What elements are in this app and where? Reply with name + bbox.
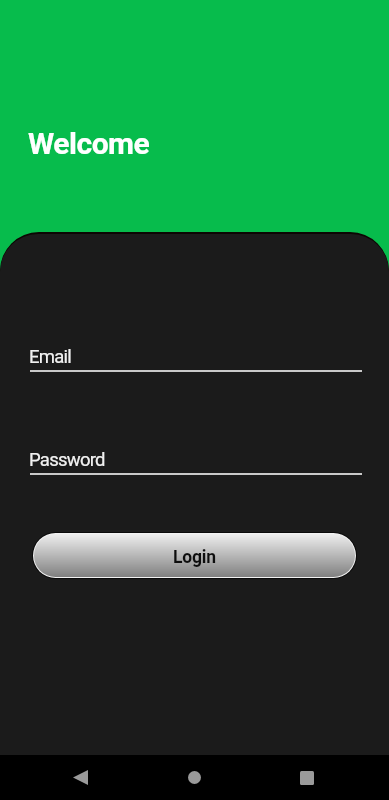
button[interactable]: Login — [34, 534, 355, 577]
staticText: Welcome — [28, 126, 150, 161]
staticText: Login — [173, 547, 216, 568]
button[interactable]: Back — [57, 755, 104, 800]
button[interactable]: Email — [29, 340, 362, 376]
staticText: Email — [29, 346, 72, 368]
button[interactable]: Home — [171, 755, 218, 800]
staticText: Password — [29, 449, 105, 471]
button[interactable]: Password — [29, 443, 362, 479]
button[interactable]: Recent apps — [283, 755, 330, 800]
